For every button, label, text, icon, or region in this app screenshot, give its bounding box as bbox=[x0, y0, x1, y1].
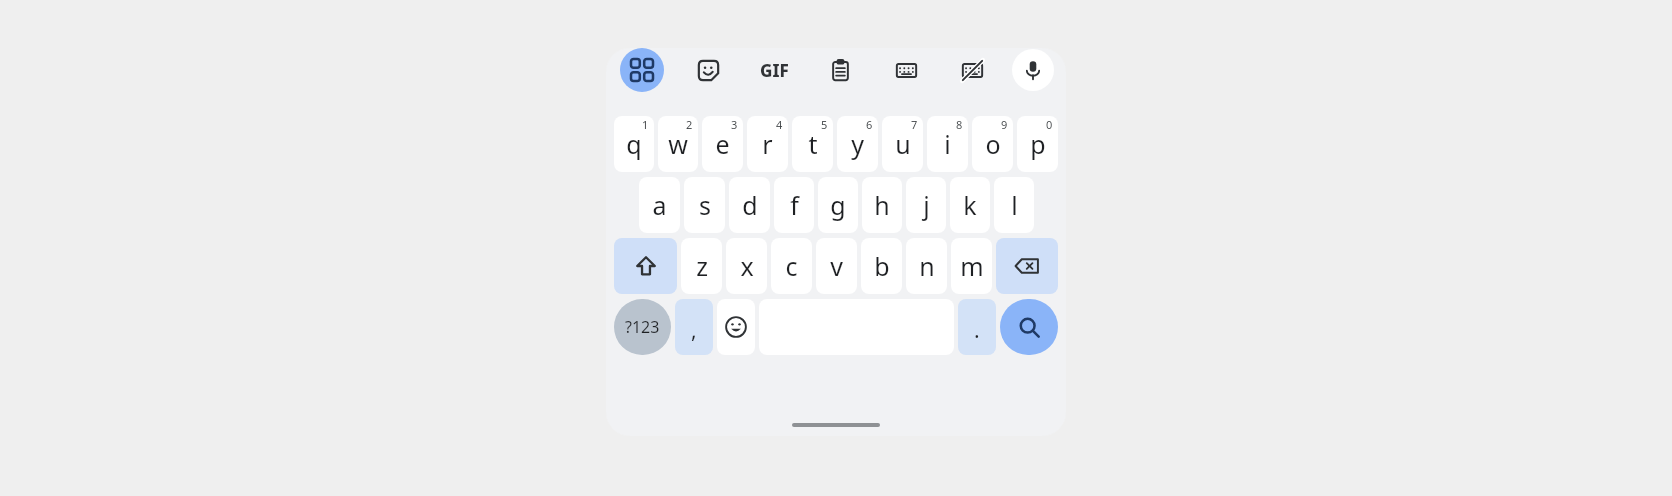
staticText: g bbox=[830, 188, 846, 222]
staticText: j bbox=[923, 188, 930, 222]
button[interactable]: j bbox=[906, 177, 946, 233]
staticText: l bbox=[1011, 188, 1018, 222]
button[interactable]: t bbox=[792, 116, 833, 172]
staticText: e bbox=[715, 127, 730, 161]
staticText: s bbox=[699, 188, 711, 222]
staticText: ?123 bbox=[625, 316, 660, 338]
button[interactable]: k bbox=[950, 177, 990, 233]
staticText: . bbox=[974, 316, 980, 345]
staticText: u bbox=[895, 127, 911, 161]
button[interactable]: e bbox=[702, 116, 743, 172]
staticText: 7 bbox=[911, 117, 918, 132]
staticText: f bbox=[790, 188, 799, 222]
staticText: GIF bbox=[760, 59, 789, 82]
button[interactable]: a bbox=[639, 177, 680, 233]
button[interactable]: Voice input bbox=[1012, 49, 1054, 91]
button[interactable]: g bbox=[818, 177, 858, 233]
button[interactable]: d bbox=[729, 177, 770, 233]
staticText: , bbox=[691, 316, 697, 345]
staticText: n bbox=[919, 249, 935, 283]
button[interactable]: , bbox=[675, 299, 713, 355]
button[interactable]: Emoji bbox=[717, 299, 755, 355]
button[interactable]: i bbox=[927, 116, 968, 172]
staticText: h bbox=[874, 188, 890, 222]
staticText: 2 bbox=[686, 117, 693, 132]
button[interactable]: v bbox=[816, 238, 857, 294]
staticText: d bbox=[742, 188, 758, 222]
staticText: z bbox=[696, 249, 708, 283]
staticText: 8 bbox=[956, 117, 963, 132]
staticText: q bbox=[626, 127, 642, 161]
button[interactable]: GIF bbox=[752, 48, 796, 92]
button[interactable]: . bbox=[958, 299, 996, 355]
staticText: b bbox=[874, 249, 890, 283]
staticText: m bbox=[960, 249, 984, 283]
staticText: 4 bbox=[776, 117, 783, 132]
staticText: x bbox=[740, 249, 754, 283]
staticText: w bbox=[668, 127, 688, 161]
staticText: c bbox=[785, 249, 798, 283]
button[interactable]: l bbox=[994, 177, 1034, 233]
staticText: 9 bbox=[1001, 117, 1008, 132]
button[interactable]: q bbox=[614, 116, 654, 172]
button[interactable]: o bbox=[972, 116, 1013, 172]
button[interactable]: y bbox=[837, 116, 878, 172]
button[interactable]: f bbox=[774, 177, 814, 233]
button[interactable]: x bbox=[726, 238, 767, 294]
staticText: r bbox=[762, 127, 773, 161]
button[interactable]: Shift bbox=[614, 238, 677, 294]
button[interactable]: b bbox=[861, 238, 902, 294]
staticText: 6 bbox=[866, 117, 873, 132]
staticText: 3 bbox=[731, 117, 738, 132]
button[interactable]: Clipboard bbox=[818, 48, 862, 92]
button[interactable]: Keyboard settings bbox=[884, 48, 928, 92]
staticText: v bbox=[830, 249, 843, 283]
button[interactable]: p bbox=[1017, 116, 1058, 172]
button[interactable]: h bbox=[862, 177, 902, 233]
button[interactable]: Toolbar menu bbox=[620, 48, 664, 92]
staticText: t bbox=[808, 127, 818, 161]
button[interactable]: c bbox=[771, 238, 812, 294]
button[interactable]: n bbox=[906, 238, 947, 294]
button[interactable]: r bbox=[747, 116, 788, 172]
staticText: k bbox=[963, 188, 977, 222]
button[interactable]: ?123 bbox=[614, 299, 671, 355]
staticText: i bbox=[944, 127, 951, 161]
button[interactable]: Search bbox=[1000, 299, 1058, 355]
button[interactable]: w bbox=[658, 116, 698, 172]
button[interactable]: s bbox=[684, 177, 725, 233]
staticText: y bbox=[851, 127, 864, 161]
staticText: o bbox=[985, 127, 1001, 161]
staticText: a bbox=[652, 188, 667, 222]
staticText: 1 bbox=[642, 117, 649, 132]
staticText: 5 bbox=[821, 117, 828, 132]
button[interactable]: Hide keyboard bbox=[950, 48, 994, 92]
button[interactable]: Stickers bbox=[686, 48, 730, 92]
button[interactable]: Backspace bbox=[996, 238, 1058, 294]
button[interactable]: m bbox=[951, 238, 992, 294]
button[interactable]: u bbox=[882, 116, 923, 172]
staticText: 0 bbox=[1046, 117, 1053, 132]
button[interactable]: z bbox=[681, 238, 722, 294]
staticText: p bbox=[1030, 127, 1046, 161]
